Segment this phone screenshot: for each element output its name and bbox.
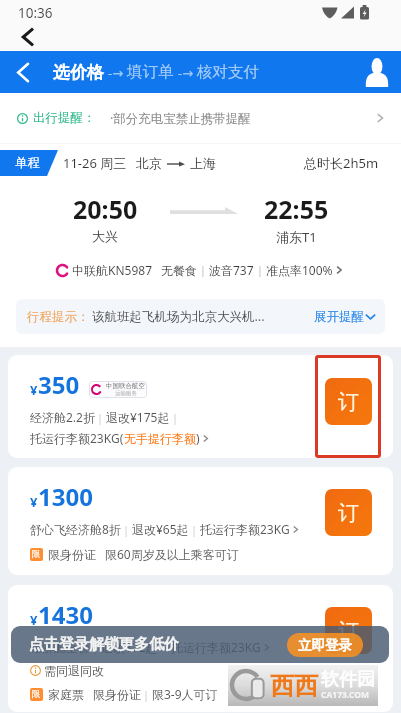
button[interactable]: 订 (325, 607, 372, 654)
button[interactable]: 订 (325, 489, 372, 536)
staticText: 北京 (136, 155, 162, 171)
staticText: 点击登录解锁更多低价 (29, 635, 179, 654)
button[interactable]: Back (11, 24, 45, 50)
staticText: 运输服务 (115, 390, 137, 397)
staticText: ·部分充电宝禁止携带提醒 (110, 110, 251, 127)
staticText: 中国联合航空 (106, 382, 145, 390)
staticText: ¥ (30, 611, 38, 629)
staticText: 舒心飞经济舱8折 (30, 521, 121, 537)
staticText: 该航班起飞机场为北京大兴机... (92, 308, 265, 325)
staticText: 限身份证 (93, 687, 141, 702)
staticText: 1430 (38, 598, 93, 631)
staticText: 订 (338, 500, 359, 526)
staticText: 经济舱2.2折 (30, 409, 95, 425)
button[interactable]: 中联航KN5987 (0, 262, 401, 278)
staticText: 需同退同改 (44, 663, 104, 678)
staticText: 单程 (15, 155, 40, 171)
staticText: 订 (338, 389, 359, 415)
staticText: -→ (108, 64, 124, 82)
staticText: 中联航KN5987 (72, 262, 153, 278)
staticText: 限60周岁及以上乘客可订 (105, 546, 239, 562)
staticText: 无餐食 (161, 263, 197, 278)
staticText: | (123, 522, 130, 537)
staticText: 软件园 (321, 668, 375, 691)
staticText: | (172, 410, 179, 425)
button[interactable]: 立即登录 (287, 633, 363, 657)
staticText: 托运行李额23KG( (30, 430, 124, 446)
staticText: 行程提示： (27, 309, 90, 325)
staticText: 22:55 (264, 192, 329, 226)
staticText: 填订单 (127, 62, 174, 82)
staticText: 托运行李额23KG (171, 639, 261, 655)
staticText: 展开提醒 (314, 309, 364, 325)
staticText: 退改¥175起 (106, 409, 170, 425)
staticText: 大兴 (92, 228, 118, 244)
staticText: ) (196, 430, 200, 446)
staticText: ¥ (30, 381, 38, 399)
staticText: | (257, 263, 263, 277)
staticText: 出行提醒： (33, 110, 96, 126)
staticText: 20:50 (73, 192, 138, 226)
staticText: 选价格 (53, 62, 104, 83)
staticText: 退改¥65起 (132, 521, 189, 537)
button[interactable]: 行程提示： (16, 299, 385, 334)
staticText: 浦东T1 (276, 228, 317, 246)
staticText: 无手提行李额 (124, 431, 196, 446)
staticText: | (92, 640, 99, 655)
staticText: 核对支付 (197, 62, 259, 82)
staticText: | (191, 522, 198, 537)
staticText: 350 (38, 368, 80, 401)
button[interactable]: 订 (325, 378, 372, 425)
staticText: 经济舱全价 (30, 640, 90, 655)
button[interactable]: 点击登录解锁更多低价 (11, 626, 389, 663)
staticText: 托运行李额23KG (200, 521, 290, 537)
staticText: 限 (32, 549, 41, 560)
staticText: -→ (178, 64, 194, 82)
staticText: 10:36 (18, 4, 53, 22)
staticText: 限3-9人可订 (152, 686, 218, 702)
staticText: 总时长2h5m (304, 154, 379, 172)
staticText: 1300 (38, 480, 93, 513)
staticText: 限身份证 (48, 547, 96, 562)
staticText: 立即登录 (298, 637, 352, 654)
staticText: CA173.COM (321, 689, 369, 701)
staticText: 西西 (270, 671, 318, 701)
button[interactable]: Account (351, 51, 399, 93)
staticText: 订 (338, 618, 359, 644)
button[interactable]: Back (0, 51, 46, 93)
staticText: | (143, 687, 150, 702)
staticText: 准点率100% (266, 262, 333, 278)
button[interactable]: 出行提醒： (0, 93, 401, 143)
staticText: 退改¥72起 (101, 639, 158, 655)
staticText: 家庭票 (48, 687, 84, 702)
staticText: 11-26 周三 (63, 154, 127, 172)
staticText: ¥ (30, 493, 38, 511)
staticText: | (97, 410, 104, 425)
staticText: 波音737 (209, 262, 254, 278)
staticText: 上海 (190, 155, 216, 171)
staticText: | (200, 263, 206, 277)
staticText: 限 (32, 689, 41, 700)
